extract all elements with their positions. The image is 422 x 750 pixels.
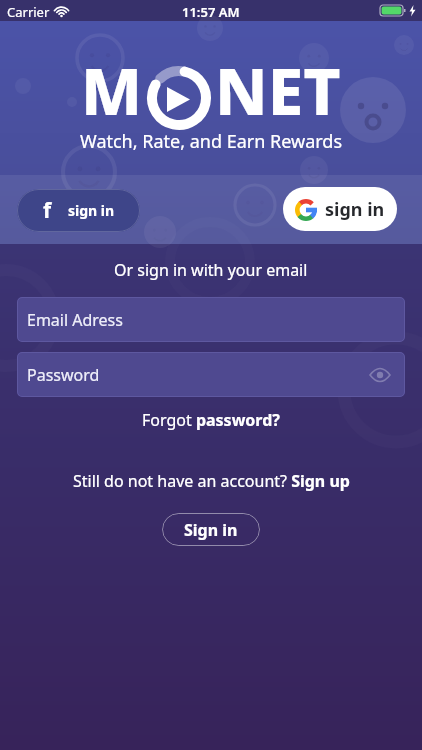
staticText: Forgot password? [142,409,280,431]
button[interactable]: Still do not have an account? Sign up [0,470,422,492]
staticText: Watch, Rate, and Earn Rewards [80,129,343,154]
button[interactable]: Email Adress [17,297,405,342]
staticText: Carrier [7,3,50,21]
staticText: Password [27,364,100,386]
staticText: Or sign in with your email [114,259,308,281]
staticText: Sign in [184,519,238,541]
button[interactable]: f [17,189,140,232]
staticText: sign in [68,201,115,220]
button[interactable]: Forgot password? [0,409,422,431]
staticText: M [81,47,143,134]
staticText: NET [215,47,341,134]
staticText: sign in [325,197,385,222]
staticText: 11:57 AM [182,3,240,21]
staticText: Still do not have an account? Sign up [73,470,350,492]
staticText: Email Adress [27,309,123,331]
button[interactable]: sign in [283,187,397,231]
button[interactable]: Sign in [162,513,260,546]
staticText: f [43,196,52,225]
button[interactable]: Password [17,352,405,397]
